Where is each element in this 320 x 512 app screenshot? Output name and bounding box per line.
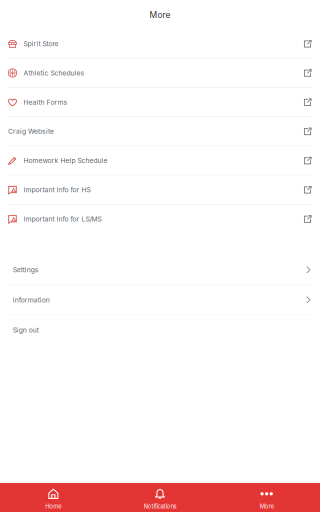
button[interactable]: Health Forms [0,88,320,116]
button[interactable]: Homework Help Schedule [0,146,320,175]
staticText: Settings [13,266,39,274]
button[interactable]: Craig Website [0,117,320,146]
button[interactable]: Information [0,285,320,315]
button[interactable]: Sign out [0,315,320,345]
button[interactable]: Home [0,483,107,512]
button[interactable]: More [213,483,320,512]
staticText: Information [13,296,50,304]
staticText: Important Info for HS [24,186,91,194]
staticText: Home [45,503,61,510]
staticText: Important Info for LS/MS [24,215,102,223]
button[interactable]: Athletic Schedules [0,59,320,87]
staticText: Homework Help Schedule [24,156,108,165]
button[interactable]: Notifications [107,483,213,512]
staticText: Craig Website [8,127,54,135]
button[interactable]: Important Info for LS/MS [0,205,320,233]
staticText: More [149,10,170,20]
staticText: More [260,503,274,510]
staticText: Spirit Store [24,40,59,48]
button[interactable]: Important Info for HS [0,176,320,204]
staticText: Sign out [13,326,39,334]
button[interactable]: Spirit Store [0,30,320,58]
staticText: Athletic Schedules [24,69,85,77]
button[interactable]: Settings [0,255,320,284]
staticText: Health Forms [24,98,68,106]
staticText: Notifications [143,503,176,510]
